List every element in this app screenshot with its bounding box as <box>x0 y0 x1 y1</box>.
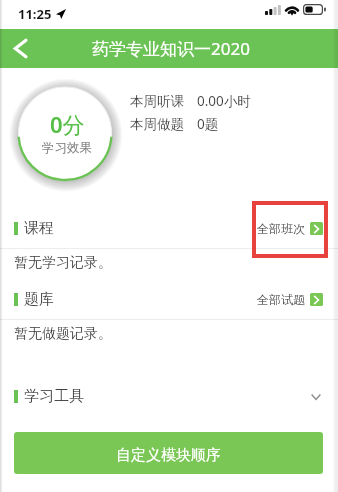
staticText: 药学专业知识一2020 <box>92 37 250 60</box>
staticText: 0.00小时 <box>197 92 251 110</box>
button[interactable]: 全部班次 <box>257 221 323 236</box>
button[interactable]: 全部试题 <box>257 292 323 307</box>
staticText: 本周做题 <box>130 116 184 133</box>
staticText: 0分 <box>50 109 85 139</box>
staticText: 题库 <box>24 290 54 309</box>
button[interactable]: Back <box>0 29 40 68</box>
staticText: 11:25 <box>18 5 52 23</box>
button[interactable]: 学习工具 <box>0 382 338 417</box>
staticText: 全部班次 <box>257 221 305 236</box>
staticText: 0题 <box>197 115 219 133</box>
staticText: 暂无学习记录。 <box>14 254 112 272</box>
button[interactable]: 自定义模块顺序 <box>14 432 323 474</box>
staticText: 学习工具 <box>24 387 84 406</box>
staticText: 暂无做题记录。 <box>14 325 112 343</box>
staticText: 课程 <box>24 219 54 238</box>
staticText: 学习效果 <box>42 140 92 156</box>
staticText: 全部试题 <box>257 292 305 307</box>
staticText: 本周听课 <box>130 93 184 110</box>
staticText: 自定义模块顺序 <box>116 446 221 465</box>
